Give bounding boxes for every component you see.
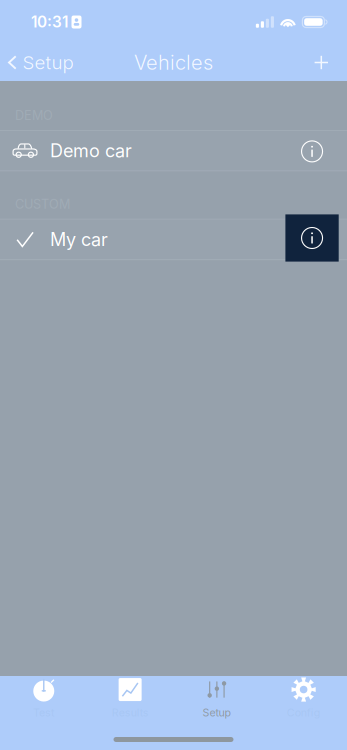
staticText: My car <box>50 229 108 250</box>
button[interactable]: Setup <box>0 44 85 81</box>
staticText: DEMO <box>15 108 53 123</box>
staticText: Vehicles <box>134 50 213 75</box>
staticText: 10:31 <box>31 13 68 31</box>
button[interactable]: Info <box>285 214 339 262</box>
button[interactable]: Setup <box>173 676 260 725</box>
staticText: Demo car <box>50 140 132 162</box>
staticText: CUSTOM <box>15 196 70 212</box>
button[interactable]: Add vehicle <box>300 44 347 81</box>
staticText: Setup <box>22 51 73 74</box>
button[interactable]: Config <box>260 676 347 725</box>
button[interactable]: Test <box>0 676 87 725</box>
staticText: Setup <box>202 706 231 719</box>
button[interactable]: Results <box>87 676 174 725</box>
button[interactable]: Info <box>285 128 339 175</box>
